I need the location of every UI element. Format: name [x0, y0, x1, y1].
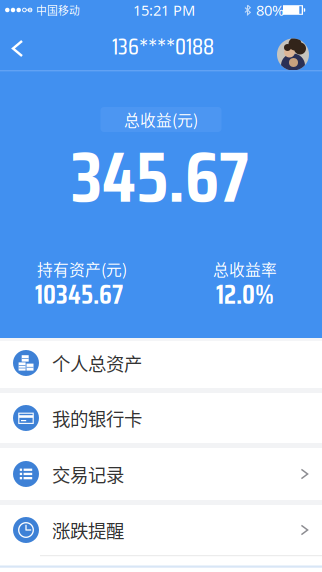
staticText: 持有资产(元) [37, 258, 127, 280]
staticText: 涨跌提醒 [52, 517, 124, 543]
staticText: 个人总资产 [52, 350, 142, 376]
staticText: 交易记录 [52, 461, 124, 487]
button[interactable]: 个人总资产 [0, 338, 322, 388]
staticText: 总收益(元) [124, 108, 198, 131]
button[interactable]: Back [3, 31, 31, 65]
staticText: 10345.67 [35, 273, 123, 315]
button[interactable]: 我的银行卡 [0, 393, 322, 443]
staticText: 80% [256, 0, 284, 20]
button[interactable]: 交易记录 [0, 448, 322, 500]
button[interactable]: 涨跌提醒 [0, 505, 322, 555]
staticText: 136****0188 [112, 29, 214, 64]
staticText: 总收益率 [213, 258, 277, 280]
staticText: 中国移动 [36, 2, 80, 18]
staticText: 12.0% [216, 273, 274, 315]
staticText: 我的银行卡 [52, 405, 142, 431]
staticText: 345.67 [71, 121, 249, 233]
staticText: 15:21 PM [133, 0, 195, 20]
button[interactable]: Profile [277, 38, 309, 70]
